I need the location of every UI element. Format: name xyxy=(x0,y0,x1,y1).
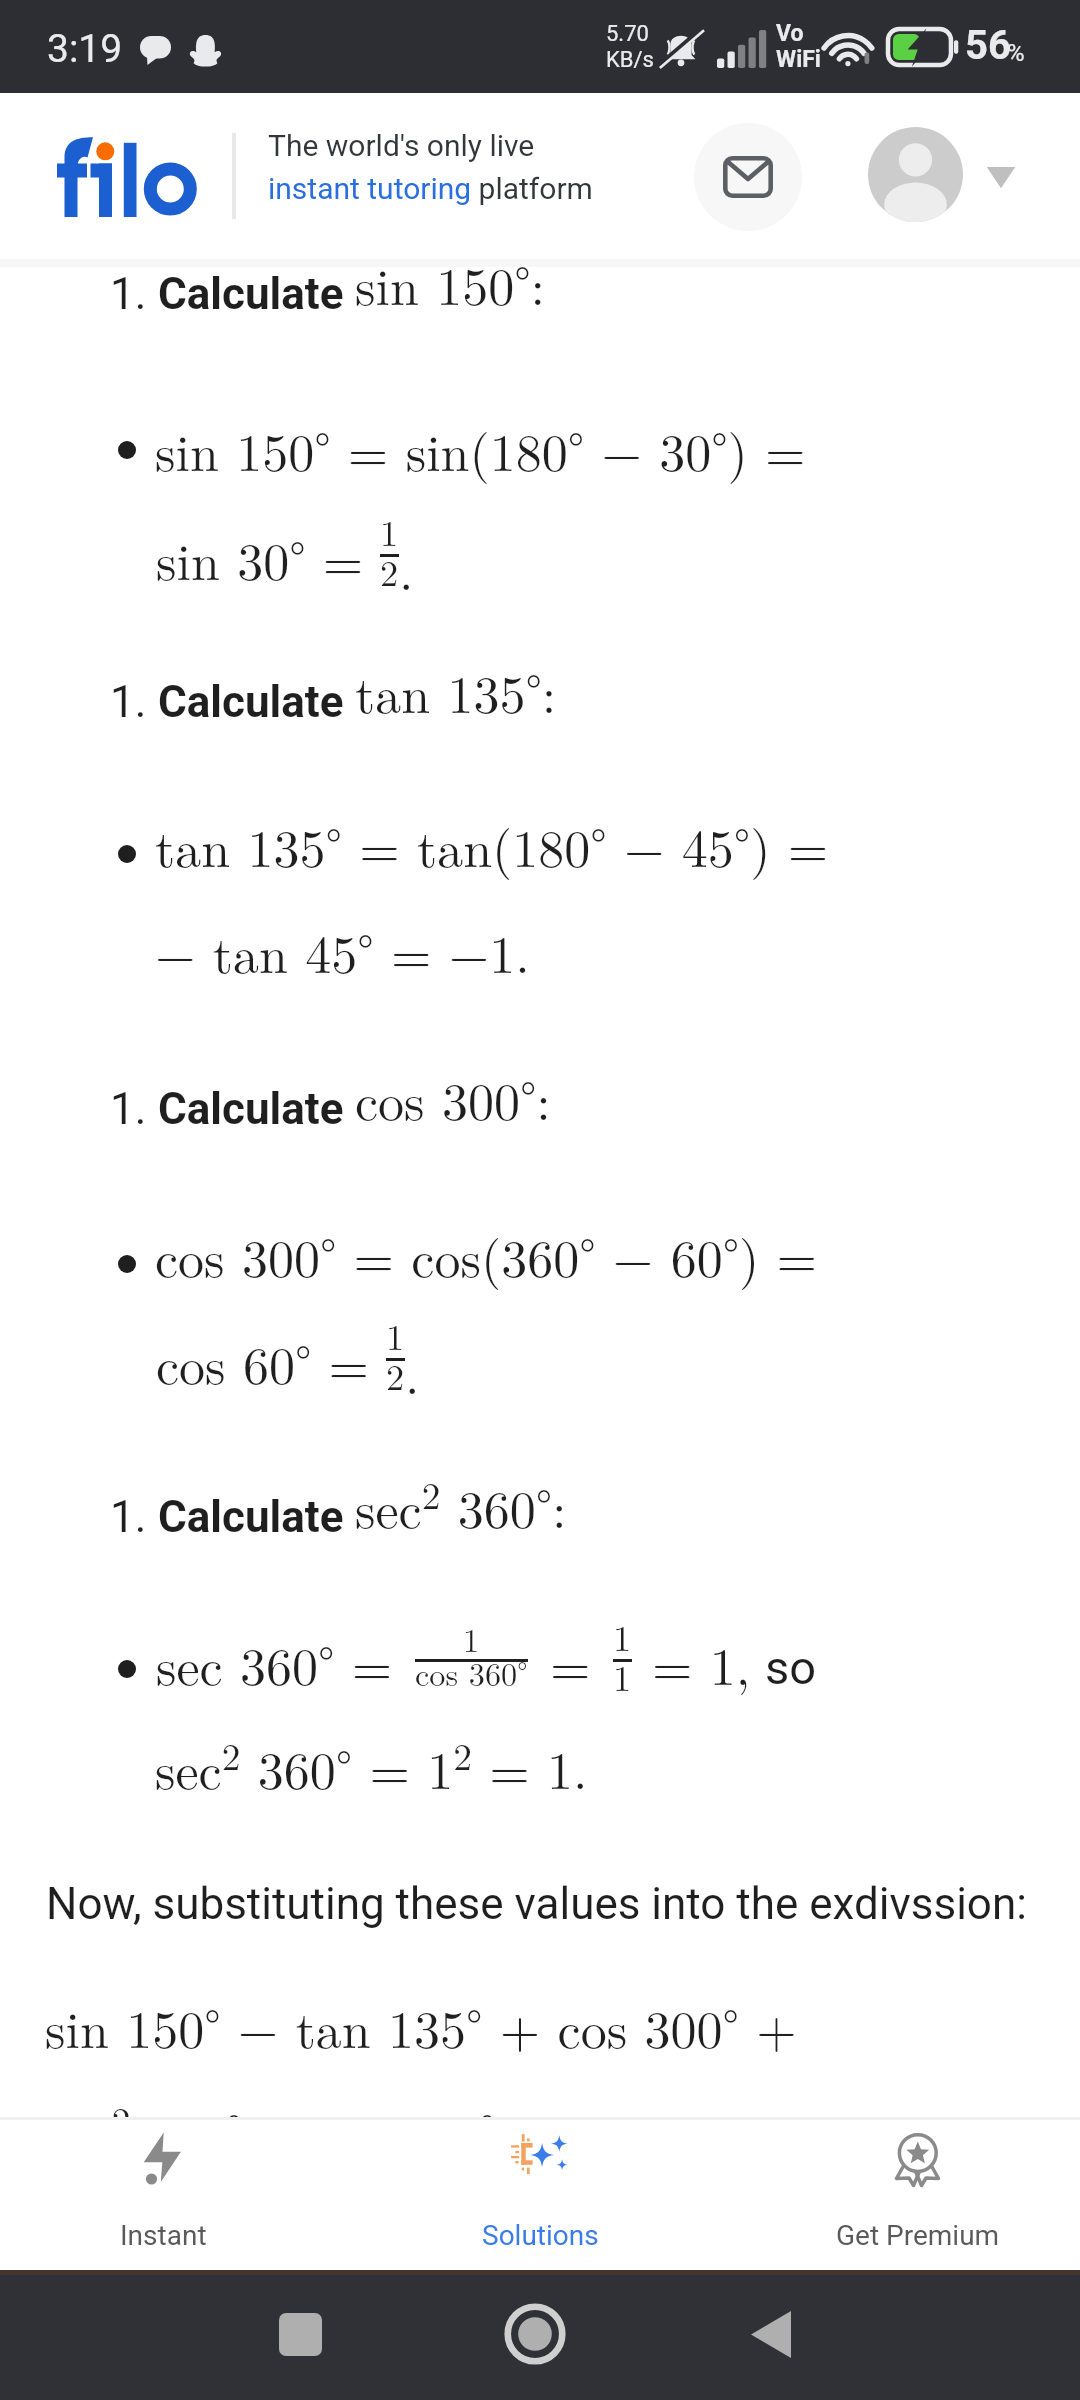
staticText: Instant xyxy=(120,2219,207,2252)
staticText: KB/s xyxy=(606,47,654,73)
staticText: Solutions xyxy=(482,2219,599,2252)
button[interactable]: Recent apps xyxy=(255,2289,345,2379)
staticText: 5.70 xyxy=(606,21,649,47)
staticText: 1 xyxy=(380,505,399,557)
staticText: cos 60° = xyxy=(156,1325,370,1399)
staticText: cos 360° xyxy=(415,1650,528,1696)
button[interactable]: Messages xyxy=(694,123,802,231)
staticText: instant tutoring platform xyxy=(268,171,593,206)
staticText: = 1, xyxy=(652,1626,751,1700)
staticText: 1. xyxy=(110,268,158,320)
staticText: = xyxy=(550,1626,591,1700)
staticText: 1 xyxy=(386,1309,405,1361)
staticText: − tan 45° = −1. xyxy=(155,914,530,988)
button[interactable]: Home xyxy=(490,2289,580,2379)
staticText: sec2 360° = 12 = 1. xyxy=(155,1728,588,1804)
staticText: The world's only live xyxy=(268,128,535,163)
staticText: 1. xyxy=(110,676,158,728)
staticText: Calculate xyxy=(158,1491,344,1543)
staticText: 56 xyxy=(965,22,1011,69)
staticText: Calculate xyxy=(158,676,344,728)
staticText: . xyxy=(399,531,414,605)
button[interactable]: Account menu xyxy=(980,158,1022,194)
staticText: 2 xyxy=(380,545,399,597)
staticText: tan 135° = tan(180° − 45°) = xyxy=(155,808,829,882)
staticText: Calculate xyxy=(158,268,344,320)
staticText: 1 xyxy=(613,1610,632,1662)
staticText: 1 xyxy=(463,1616,480,1662)
staticText: 3:19 xyxy=(47,26,123,72)
staticText: Vo xyxy=(776,20,804,47)
button[interactable]: Get Premium xyxy=(738,2120,1080,2270)
button[interactable]: Solutions xyxy=(360,2120,720,2270)
staticText: . xyxy=(405,1335,420,1409)
staticText: sin 30° = xyxy=(156,521,364,595)
button[interactable]: Back xyxy=(726,2289,816,2379)
staticText: so xyxy=(765,1640,817,1695)
staticText: sin 150° − tan 135° + cos 300° + xyxy=(45,1989,797,2063)
staticText: sin 150°: xyxy=(355,246,546,320)
staticText: WiFi xyxy=(776,46,821,73)
staticText: % xyxy=(1007,39,1025,67)
staticText: 2 xyxy=(386,1349,405,1401)
button[interactable]: Instant xyxy=(0,2120,343,2270)
staticText: sec2 360°: xyxy=(355,1467,567,1543)
staticText: sec2 360° − tan 45° + 1 xyxy=(45,2092,597,2168)
staticText: Now, substituting these values into the … xyxy=(46,1878,1027,1930)
staticText: Calculate xyxy=(158,1083,344,1135)
staticText: tan 135°: xyxy=(355,654,557,728)
staticText: 1 xyxy=(613,1650,632,1702)
staticText: sin 150° = sin(180° − 30°) = xyxy=(155,412,806,486)
staticText: Get Premium xyxy=(836,2219,1000,2252)
staticText: 1. xyxy=(110,1083,158,1135)
staticText: 1. xyxy=(110,1491,158,1543)
staticText: cos 300°: xyxy=(355,1061,551,1135)
button[interactable]: Profile xyxy=(868,127,963,222)
staticText: cos 300° = cos(360° − 60°) = xyxy=(155,1218,818,1292)
staticText: sec 360° = xyxy=(156,1626,393,1700)
